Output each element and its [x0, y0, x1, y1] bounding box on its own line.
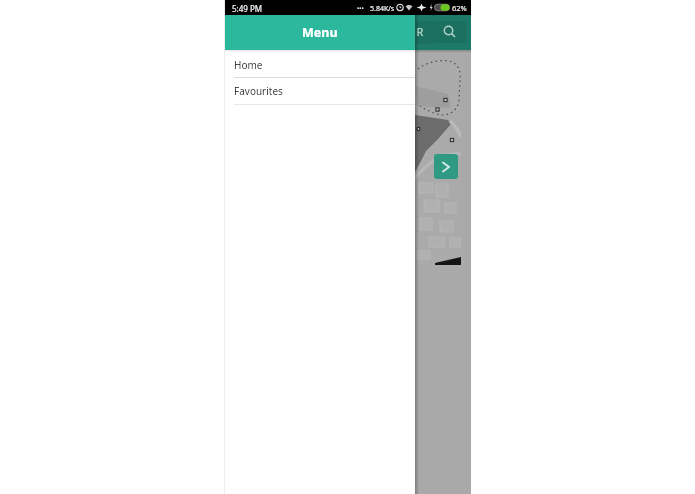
button[interactable]: [433, 21, 467, 43]
button[interactable]: [434, 154, 458, 179]
button[interactable]: Favourites: [224, 78, 415, 104]
staticText: 5.84K/s: [370, 4, 395, 14]
staticText: 5:49 PM: [232, 3, 263, 14]
staticText: R: [414, 24, 426, 39]
staticText: ...: [357, 0, 364, 11]
button[interactable]: [416, 21, 433, 44]
staticText: Home: [234, 58, 263, 72]
staticText: Menu: [302, 24, 338, 41]
staticText: Favourites: [234, 84, 283, 98]
button[interactable]: Home: [224, 52, 415, 77]
staticText: 62%: [452, 3, 467, 13]
